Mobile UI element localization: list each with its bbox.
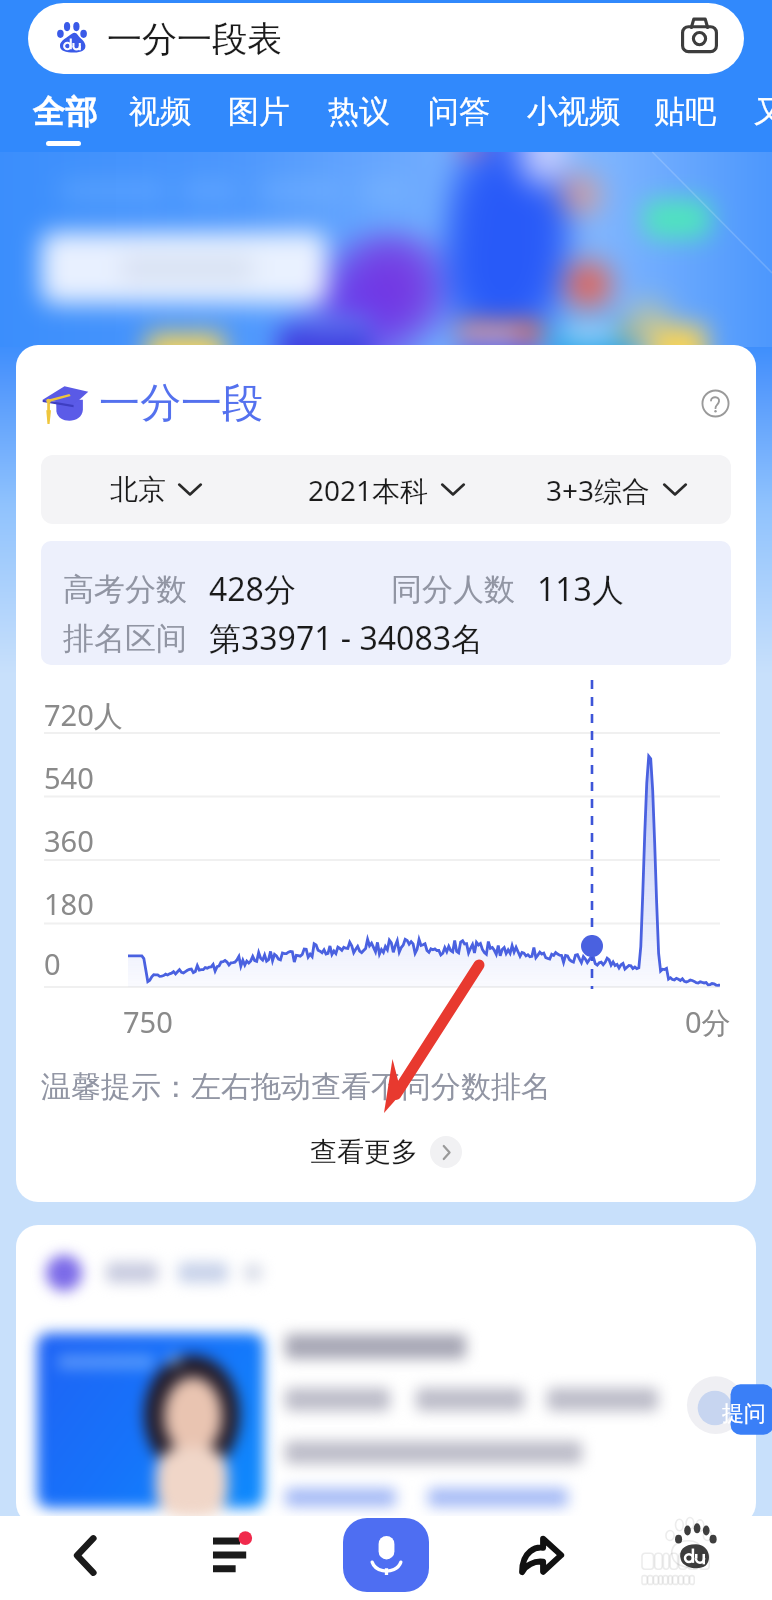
staticText: 428分 (209, 567, 296, 611)
staticText: 小视频 (527, 92, 620, 131)
staticText: 查看更多 (310, 1135, 418, 1169)
staticText: 视频 (129, 92, 191, 131)
staticText: 温馨提示：左右拖动查看不同分数排名 (41, 1068, 551, 1106)
button[interactable]: 问答 (418, 78, 500, 137)
staticText: 同分人数 (391, 570, 515, 609)
button[interactable]: 查看更多 (41, 1135, 731, 1169)
button[interactable]: 北京 (41, 455, 271, 524)
button[interactable]: 图片 (218, 78, 300, 137)
button[interactable]: Menu (189, 1513, 277, 1593)
staticText: 问答 (428, 92, 490, 131)
button[interactable]: 又 (744, 78, 772, 137)
button[interactable]: Voice search (343, 1518, 429, 1592)
staticText: 全部 (33, 92, 97, 132)
staticText: 180 (44, 884, 94, 923)
staticText: 540 (44, 758, 94, 797)
staticText: 一分一段表 (107, 17, 282, 61)
button[interactable]: Share (500, 1515, 582, 1595)
staticText: 2021本科 (308, 471, 429, 509)
staticText: 图片 (228, 92, 290, 131)
staticText: 3+3综合 (546, 471, 651, 509)
button[interactable]: Camera search (668, 8, 730, 70)
staticText: 750 (123, 1002, 173, 1041)
button[interactable]: 贴吧 (644, 78, 726, 137)
staticText: 提问 (722, 1400, 766, 1428)
button[interactable]: Help (687, 385, 731, 429)
staticText: 0 (44, 944, 61, 983)
staticText: 第33971 - 34083名 (209, 616, 483, 660)
staticText: 贴吧 (654, 92, 716, 131)
staticText: 360 (44, 821, 94, 860)
button[interactable]: 一分一段表 (28, 3, 744, 74)
staticText: 113人 (537, 567, 624, 611)
staticText: 720人 (44, 695, 123, 735)
button[interactable]: 全部 (23, 78, 107, 138)
staticText: 北京 (110, 472, 166, 507)
button[interactable]: 小视频 (517, 78, 630, 137)
button[interactable]: Profile (640, 1518, 740, 1598)
staticText: 一分一段 (99, 378, 263, 430)
button[interactable]: 3+3综合 (501, 455, 731, 524)
staticText: 又 (754, 92, 772, 131)
button[interactable]: 2021本科 (271, 455, 501, 524)
staticText: 0分 (685, 1002, 731, 1042)
button[interactable]: 热议 (318, 78, 400, 137)
staticText: 高考分数 (63, 570, 187, 609)
button[interactable]: Ask a question (690, 1372, 768, 1444)
staticText: 热议 (328, 92, 390, 131)
button[interactable]: Back (45, 1515, 125, 1595)
staticText: 排名区间 (63, 619, 187, 658)
button[interactable]: 视频 (119, 78, 201, 137)
